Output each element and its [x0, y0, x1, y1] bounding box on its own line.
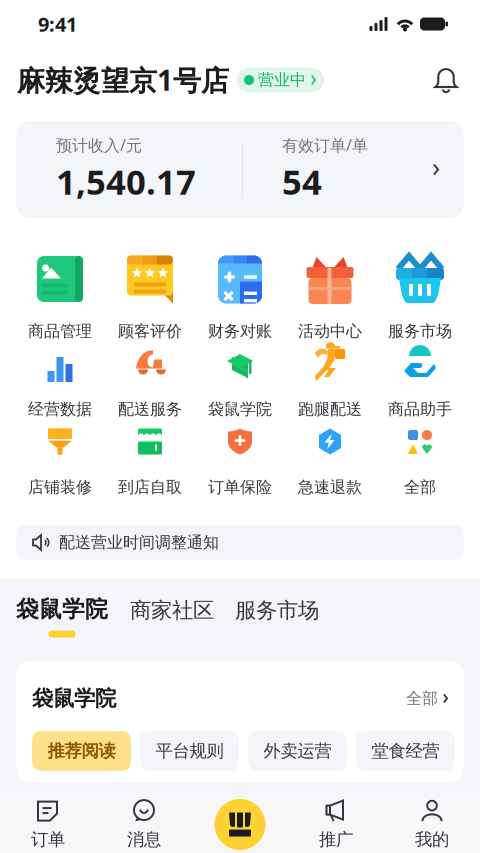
button[interactable]: 店铺装修	[15, 410, 105, 488]
staticText: 商品助手	[388, 399, 452, 419]
staticText: 服务市场	[235, 597, 319, 624]
staticText: 外卖运营	[263, 740, 331, 762]
button[interactable]: 经营数据	[15, 332, 105, 410]
staticText: 服务市场	[388, 321, 452, 341]
staticText: 财务对账	[208, 321, 272, 341]
button[interactable]: 商家社区	[108, 595, 214, 624]
staticText: 跑腿配送	[298, 399, 362, 419]
staticText: 活动中心	[298, 321, 362, 341]
button[interactable]: 订单	[0, 791, 96, 853]
staticText: 营业中	[258, 70, 306, 90]
staticText: 袋鼠学院	[16, 595, 108, 624]
staticText: 全部	[406, 688, 438, 709]
button[interactable]: 顾客评价	[105, 254, 195, 332]
staticText: 有效订单/单	[282, 134, 368, 156]
staticText: 配送服务	[118, 399, 182, 419]
button[interactable]: 营业中	[237, 67, 324, 92]
button[interactable]: 服务市场	[375, 254, 465, 332]
button[interactable]: 商品管理	[15, 254, 105, 332]
staticText: 1,540.17	[56, 158, 196, 205]
button[interactable]: 推广	[288, 791, 384, 853]
button[interactable]: 袋鼠学院	[16, 595, 108, 638]
button[interactable]: 我的	[384, 791, 480, 853]
button[interactable]: 外卖运营	[248, 731, 347, 771]
button[interactable]: 订单保险	[195, 410, 285, 488]
button[interactable]: 服务市场	[214, 595, 319, 624]
staticText: 经营数据	[28, 399, 92, 419]
button[interactable]: 急速退款	[285, 410, 375, 488]
staticText: 平台规则	[155, 740, 223, 762]
staticText: 54	[282, 158, 322, 205]
button[interactable]: 配送服务	[105, 332, 195, 410]
staticText: 预计收入/元	[56, 134, 142, 156]
button[interactable]: 店铺	[192, 791, 288, 853]
button[interactable]: 全部	[406, 688, 448, 709]
button[interactable]: 堂食经营	[356, 731, 455, 771]
staticText: 堂食经营	[371, 740, 439, 762]
button[interactable]: 推荐阅读	[32, 731, 131, 771]
button[interactable]: 活动中心	[285, 254, 375, 332]
staticText: 商家社区	[130, 597, 214, 624]
staticText: 商品管理	[28, 321, 92, 341]
button[interactable]: 跑腿配送	[285, 332, 375, 410]
staticText: 急速退款	[298, 477, 362, 497]
button[interactable]: 通知	[433, 66, 459, 93]
staticText: 麻辣烫望京1号店	[17, 61, 229, 99]
staticText: 推广	[319, 829, 353, 850]
button[interactable]: 平台规则	[140, 731, 239, 771]
staticText: 配送营业时间调整通知	[59, 532, 219, 553]
button[interactable]: 预计收入/元	[16, 121, 464, 218]
staticText: 袋鼠学院	[32, 685, 116, 712]
staticText: 全部	[404, 477, 436, 497]
button[interactable]: 财务对账	[195, 254, 285, 332]
staticText: 顾客评价	[118, 321, 182, 341]
staticText: 袋鼠学院	[208, 399, 272, 419]
button[interactable]: 商品助手	[375, 332, 465, 410]
staticText: 消息	[127, 829, 161, 850]
staticText: 到店自取	[118, 477, 182, 497]
staticText: 我的	[415, 829, 449, 850]
staticText: 订单	[31, 829, 65, 850]
staticText: 9:41	[38, 10, 77, 38]
button[interactable]: 袋鼠学院	[195, 332, 285, 410]
staticText: 推荐阅读	[47, 740, 115, 762]
button[interactable]: 配送营业时间调整通知	[16, 525, 464, 560]
staticText: 订单保险	[208, 477, 272, 497]
button[interactable]: 全部	[375, 410, 465, 488]
button[interactable]: 到店自取	[105, 410, 195, 488]
staticText: 店铺装修	[28, 477, 92, 497]
button[interactable]: 消息	[96, 791, 192, 853]
